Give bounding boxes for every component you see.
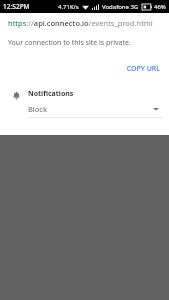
staticText: 12:52PM: [3, 2, 30, 11]
staticText: Notifications: [28, 89, 74, 99]
button[interactable]: Notifications: [0, 89, 169, 118]
staticText: https://api.connecto.io/events_prod.html: [8, 18, 153, 28]
other: Change notification permission: [153, 107, 159, 111]
staticText: COPY URL: [126, 64, 160, 74]
staticText: Block: [28, 104, 47, 114]
staticText: 46%: [154, 3, 166, 11]
staticText: 4.71K/s: [58, 3, 79, 11]
staticText: Vodafone 3G: [102, 3, 139, 11]
button[interactable]: COPY URL: [117, 61, 169, 77]
staticText: Your connection to this site is private.: [8, 38, 131, 48]
